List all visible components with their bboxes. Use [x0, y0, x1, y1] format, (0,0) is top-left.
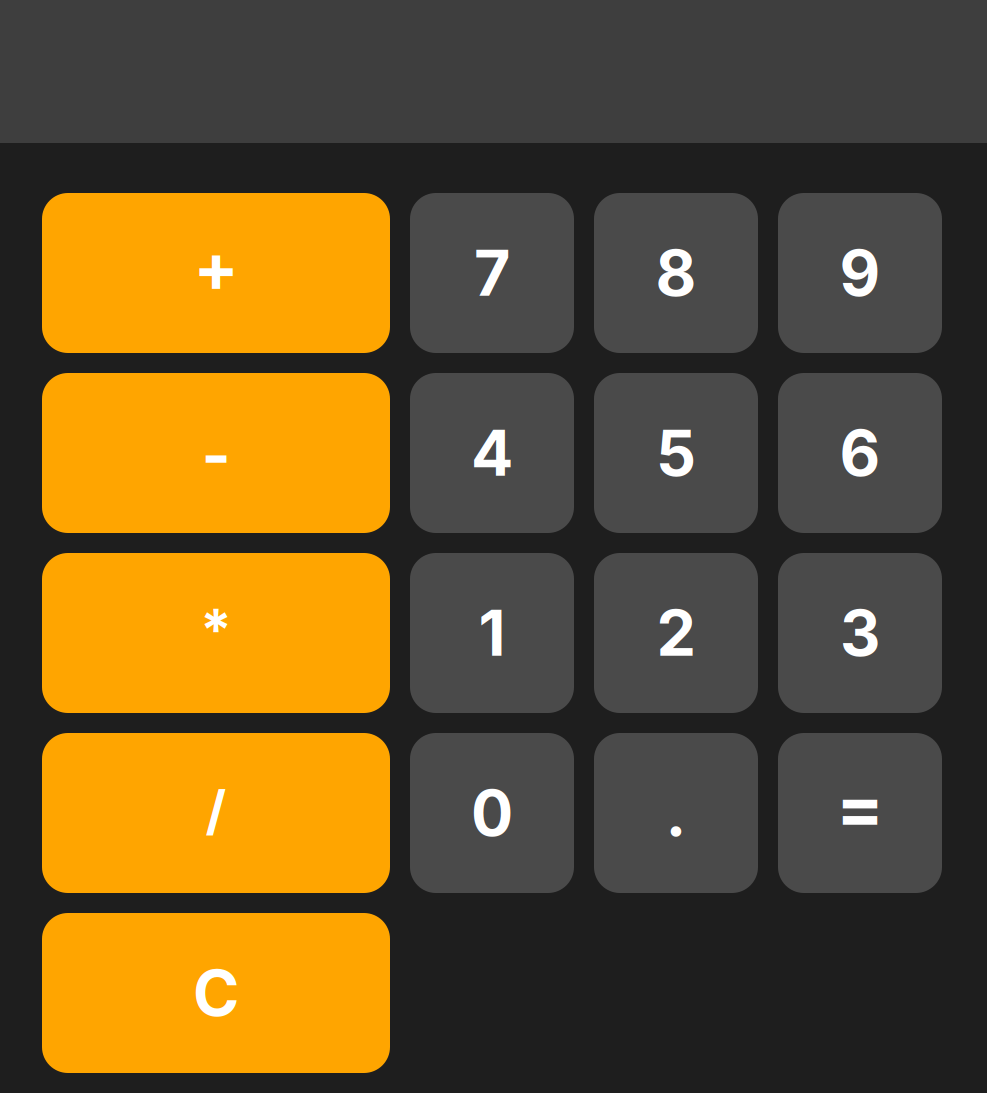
staticText: - — [201, 417, 230, 493]
button[interactable]: C — [42, 913, 390, 1073]
button[interactable]: * — [42, 553, 390, 713]
button[interactable]: 9 — [778, 193, 942, 353]
button[interactable]: 1 — [410, 553, 574, 713]
button[interactable]: = — [778, 733, 942, 893]
button[interactable]: / — [42, 733, 390, 893]
staticText: * — [200, 595, 232, 665]
staticText: 3 — [840, 595, 880, 671]
staticText: 5 — [656, 415, 696, 491]
staticText: 9 — [839, 235, 880, 311]
button[interactable]: - — [42, 373, 390, 533]
button[interactable]: 5 — [594, 373, 758, 533]
staticText: 6 — [839, 415, 880, 491]
staticText: + — [193, 227, 238, 307]
staticText: = — [836, 764, 884, 850]
staticText: 2 — [656, 595, 695, 671]
button[interactable]: + — [42, 193, 390, 353]
staticText: 8 — [655, 235, 696, 311]
button[interactable]: 7 — [410, 193, 574, 353]
staticText: C — [193, 955, 239, 1031]
button[interactable]: 0 — [410, 733, 574, 893]
button[interactable]: . — [594, 733, 758, 893]
staticText: . — [665, 775, 686, 851]
button[interactable]: 6 — [778, 373, 942, 533]
staticText: 0 — [471, 775, 513, 851]
button[interactable]: 8 — [594, 193, 758, 353]
staticText: 4 — [471, 415, 513, 491]
button[interactable]: 4 — [410, 373, 574, 533]
button[interactable]: 3 — [778, 553, 942, 713]
staticText: 7 — [474, 235, 510, 311]
button[interactable]: 2 — [594, 553, 758, 713]
staticText: 1 — [478, 595, 505, 671]
staticText: / — [205, 778, 226, 842]
